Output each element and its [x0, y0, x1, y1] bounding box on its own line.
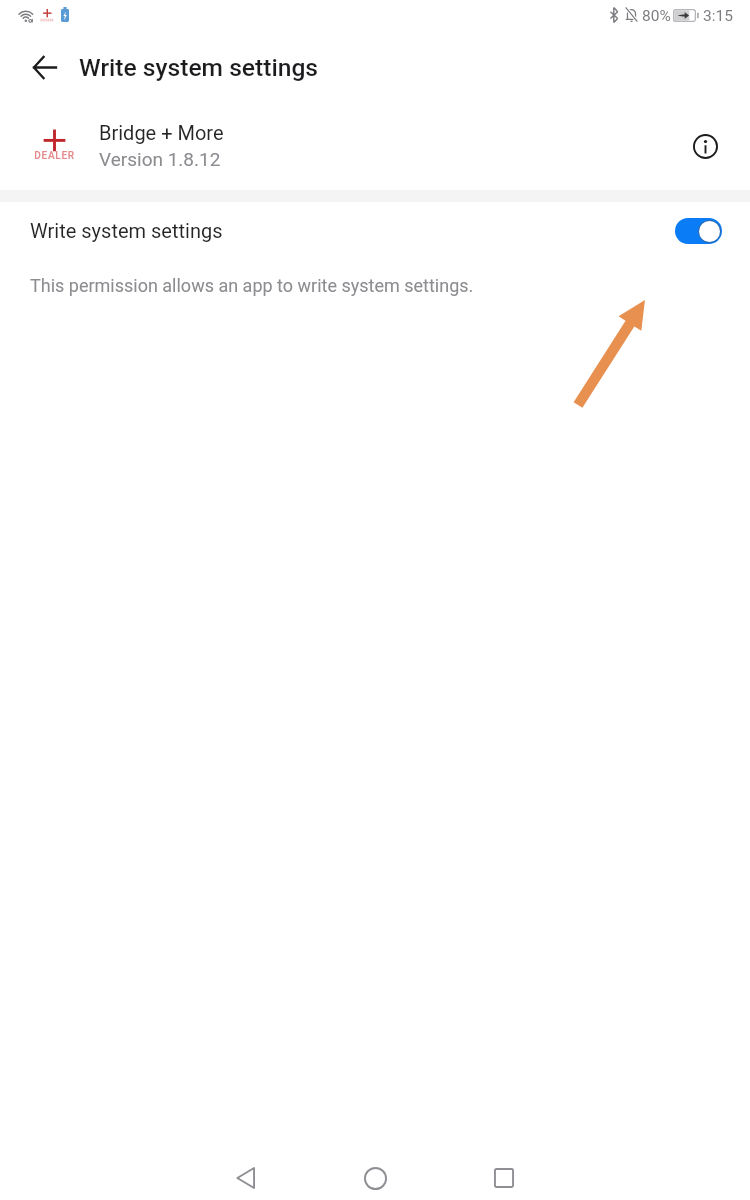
staticText: This permission allows an app to write s… — [30, 275, 474, 296]
staticText: 80% — [642, 7, 671, 25]
staticText: DEALER — [31, 150, 78, 162]
button[interactable]: DEALER — [0, 100, 750, 190]
button[interactable]: Write system settings — [0, 202, 750, 258]
staticText: 3:15 — [703, 7, 733, 25]
button[interactable]: Navigate up — [12, 35, 76, 99]
staticText: Write system settings — [79, 53, 319, 82]
button[interactable]: Recent apps — [464, 1138, 544, 1200]
button[interactable]: App info — [669, 110, 741, 182]
button[interactable]: Back — [205, 1138, 285, 1200]
button[interactable]: Home — [335, 1138, 415, 1200]
staticText: Bridge + More — [99, 121, 224, 144]
button[interactable]: Write system settings toggle — [675, 218, 722, 244]
staticText: Write system settings — [30, 219, 223, 242]
staticText: Version 1.8.12 — [99, 148, 221, 170]
